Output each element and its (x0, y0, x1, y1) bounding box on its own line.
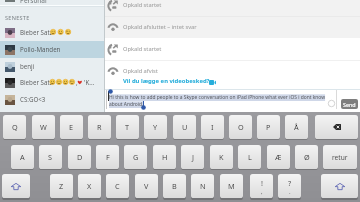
button[interactable]: Opkald startet (105, 0, 360, 16)
staticText: Å (294, 122, 299, 132)
button[interactable]: Vil du lægge en videobesked? (123, 77, 210, 85)
button[interactable]: X (78, 174, 101, 198)
button[interactable]: E (60, 115, 83, 139)
staticText: Hi this is how to add people to a Skype … (109, 94, 326, 101)
staticText: CS:GO<3 (20, 95, 46, 103)
staticText: benji (20, 62, 35, 70)
button[interactable]: Opkald afvist (105, 60, 360, 82)
staticText: E (69, 122, 74, 132)
button[interactable]: Shift (2, 174, 30, 198)
staticText: Ø (304, 152, 310, 162)
button[interactable]: M (220, 174, 243, 198)
staticText: J (192, 152, 194, 162)
staticText: Send (343, 101, 356, 108)
staticText: X (87, 181, 92, 191)
staticText: A (20, 152, 25, 162)
staticText: Q (12, 122, 18, 132)
staticText: L (248, 152, 252, 162)
staticText: O (238, 122, 244, 132)
button[interactable]: G (124, 145, 147, 169)
staticText: Opkald startet (123, 45, 162, 53)
staticText: Y (153, 122, 158, 132)
staticText: Bieber Satz (20, 28, 53, 36)
button[interactable]: U (173, 115, 196, 139)
staticText: H (162, 152, 168, 162)
staticText: D (77, 152, 83, 162)
staticText: N (200, 181, 206, 191)
button[interactable]: ? (278, 174, 301, 198)
button[interactable]: J (181, 145, 204, 169)
staticText: F (106, 152, 110, 162)
button[interactable]: benji (0, 58, 104, 75)
staticText: V (144, 181, 149, 191)
staticText: M (228, 181, 235, 191)
button[interactable]: Bieber Satz (0, 74, 104, 91)
staticText: retur (332, 153, 348, 162)
staticText: Opkald startet (123, 1, 162, 9)
button[interactable]: Backspace (315, 115, 358, 139)
button[interactable]: Bieber Satz (0, 24, 104, 41)
button[interactable]: Pollo-Manden (0, 41, 104, 58)
button[interactable]: Opkald startet (105, 38, 360, 60)
button[interactable]: Return (323, 145, 357, 169)
staticText: Vil du lægge en videobesked? (123, 77, 210, 85)
staticText: B (172, 181, 177, 191)
button[interactable]: V (135, 174, 158, 198)
staticText: Opkald afvist (123, 67, 158, 75)
staticText: 'K... (84, 78, 95, 86)
staticText: SENESTE (5, 14, 30, 21)
button[interactable]: T (116, 115, 139, 139)
button[interactable]: Q (3, 115, 26, 139)
button[interactable]: Z (50, 174, 73, 198)
staticText: ? (288, 178, 292, 188)
button[interactable]: Y (144, 115, 167, 139)
staticText: . (289, 188, 291, 196)
staticText: , (261, 188, 263, 196)
button[interactable]: R (88, 115, 111, 139)
staticText: W (40, 122, 47, 132)
button[interactable]: L (238, 145, 261, 169)
staticText: ! (261, 178, 263, 188)
staticText: G (133, 152, 139, 162)
staticText: S (48, 152, 53, 162)
button[interactable]: A (11, 145, 34, 169)
button[interactable]: W (32, 115, 55, 139)
staticText: Bieber Satz (20, 78, 53, 86)
button[interactable]: ! (250, 174, 273, 198)
button[interactable]: Shift (321, 174, 358, 198)
button[interactable]: Ø (295, 145, 318, 169)
staticText: , (76, 78, 78, 86)
button[interactable]: Opkald afsluttet – intet svar (105, 16, 360, 38)
button[interactable]: I (201, 115, 224, 139)
staticText: T (125, 122, 130, 132)
button[interactable]: D (68, 145, 91, 169)
button[interactable]: F (96, 145, 119, 169)
button[interactable]: H (153, 145, 176, 169)
button[interactable]: S (39, 145, 62, 169)
button[interactable]: Emoticons (327, 99, 336, 108)
button[interactable]: P (257, 115, 280, 139)
button[interactable]: N (191, 174, 214, 198)
button[interactable]: Send (341, 99, 358, 109)
staticText: C (115, 181, 120, 191)
button[interactable]: C (106, 174, 129, 198)
button[interactable]: O (229, 115, 252, 139)
button[interactable]: Æ (267, 145, 290, 169)
staticText: Opkald afsluttet – intet svar (123, 23, 197, 31)
button[interactable]: Å (285, 115, 308, 139)
staticText: K (219, 152, 224, 162)
staticText: Æ (275, 152, 282, 162)
staticText: P (266, 122, 271, 132)
button[interactable]: K (210, 145, 233, 169)
staticText: R (97, 122, 102, 132)
staticText: Z (59, 181, 64, 191)
button[interactable]: B (163, 174, 186, 198)
staticText: Personal (20, 0, 47, 5)
staticText: U (182, 122, 188, 132)
staticText: I (211, 122, 214, 132)
staticText: about Android. (109, 101, 144, 108)
button[interactable]: CS:GO<3 (0, 91, 104, 108)
staticText: Pollo-Manden (20, 45, 61, 53)
